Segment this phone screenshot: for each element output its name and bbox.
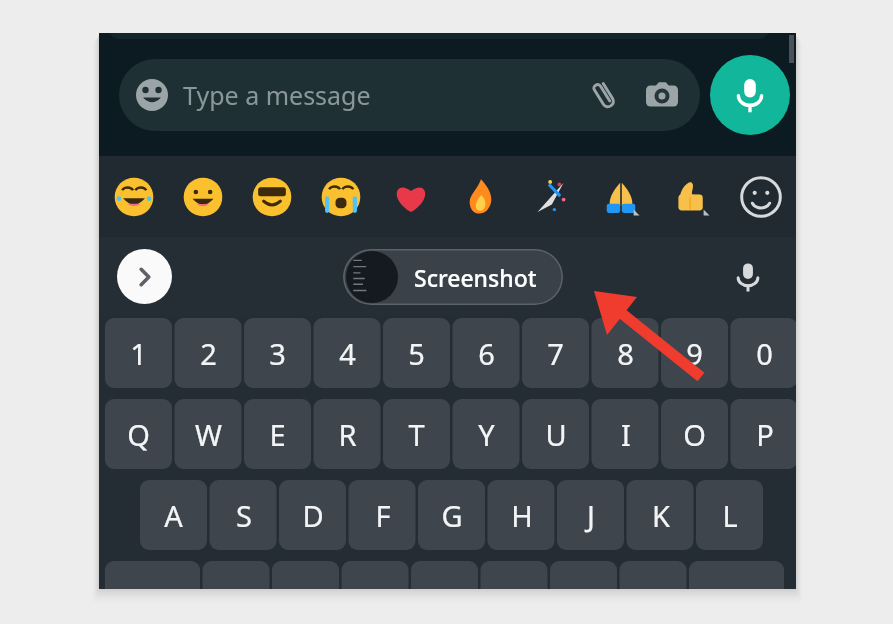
button[interactable]: Expand bbox=[117, 249, 172, 304]
button[interactable]: Camera bbox=[640, 73, 684, 117]
staticText: R bbox=[338, 415, 357, 454]
button[interactable]: 6 bbox=[453, 318, 520, 388]
button[interactable]: O bbox=[661, 399, 728, 469]
staticText: 5 bbox=[408, 334, 425, 373]
button[interactable]: Voice input bbox=[726, 255, 770, 299]
button[interactable]: L bbox=[696, 480, 763, 550]
button[interactable]: Thumbs up emoji bbox=[656, 162, 726, 232]
button[interactable]: G bbox=[418, 480, 485, 550]
staticText: O bbox=[683, 415, 706, 454]
button[interactable]: Party emoji bbox=[516, 162, 586, 232]
button[interactable]: Emoji bbox=[119, 59, 700, 131]
staticText: I bbox=[621, 415, 631, 454]
staticText: 4 bbox=[339, 334, 356, 373]
staticText: 6 bbox=[478, 334, 495, 373]
staticText: G bbox=[441, 496, 463, 535]
button[interactable]: Sunglasses emoji bbox=[237, 162, 306, 232]
button[interactable]: More emoji bbox=[726, 162, 796, 232]
button[interactable]: W bbox=[175, 399, 242, 469]
button[interactable]: Attach bbox=[582, 73, 626, 117]
button[interactable]: Screenshot bbox=[343, 249, 563, 305]
button[interactable]: Y bbox=[453, 399, 520, 469]
staticText: 3 bbox=[269, 334, 286, 373]
staticText: P bbox=[756, 415, 774, 454]
button[interactable]: 0 bbox=[731, 318, 796, 388]
staticText: J bbox=[587, 496, 595, 535]
staticText: F bbox=[375, 496, 391, 535]
button[interactable]: Laughing emoji bbox=[99, 162, 168, 232]
staticText: Screenshot bbox=[414, 262, 537, 293]
staticText: 2 bbox=[200, 334, 217, 373]
button[interactable]: R bbox=[314, 399, 381, 469]
button[interactable]: E bbox=[244, 399, 311, 469]
staticText: 0 bbox=[756, 334, 773, 373]
button[interactable]: Heart emoji bbox=[376, 162, 446, 232]
button[interactable]: 7 bbox=[522, 318, 589, 388]
button[interactable]: D bbox=[279, 480, 346, 550]
button[interactable]: T bbox=[383, 399, 450, 469]
staticText: 1 bbox=[130, 334, 147, 373]
staticText: 8 bbox=[617, 334, 634, 373]
staticText: S bbox=[236, 496, 252, 535]
button[interactable]: P bbox=[731, 399, 796, 469]
staticText: Q bbox=[127, 415, 150, 454]
button[interactable]: F bbox=[349, 480, 416, 550]
button[interactable]: 5 bbox=[383, 318, 450, 388]
staticText: H bbox=[511, 496, 533, 535]
button[interactable]: 1 bbox=[105, 318, 172, 388]
button[interactable]: K bbox=[627, 480, 694, 550]
staticText: Type a message bbox=[183, 78, 371, 112]
staticText: 7 bbox=[547, 334, 564, 373]
button[interactable]: 3 bbox=[244, 318, 311, 388]
button[interactable]: 9 bbox=[661, 318, 728, 388]
button[interactable]: 8 bbox=[592, 318, 659, 388]
staticText: T bbox=[408, 415, 425, 454]
staticText: U bbox=[545, 415, 567, 454]
button[interactable]: H bbox=[488, 480, 555, 550]
other: Emoji bbox=[135, 78, 169, 112]
button[interactable]: Q bbox=[105, 399, 172, 469]
button[interactable]: Praying hands emoji bbox=[586, 162, 656, 232]
staticText: 9 bbox=[686, 334, 703, 373]
button[interactable]: 4 bbox=[314, 318, 381, 388]
button[interactable]: Voice message bbox=[710, 55, 790, 135]
button[interactable]: I bbox=[592, 399, 659, 469]
button[interactable]: A bbox=[140, 480, 207, 550]
staticText: E bbox=[269, 415, 286, 454]
button[interactable]: J bbox=[557, 480, 624, 550]
staticText: A bbox=[164, 496, 183, 535]
staticText: K bbox=[652, 496, 670, 535]
staticText: W bbox=[195, 415, 222, 454]
button[interactable]: Crying emoji bbox=[306, 162, 376, 232]
button[interactable]: U bbox=[522, 399, 589, 469]
button[interactable]: Fire emoji bbox=[446, 162, 516, 232]
button[interactable]: 2 bbox=[175, 318, 242, 388]
staticText: Y bbox=[478, 415, 495, 454]
button[interactable]: Smiling emoji bbox=[168, 162, 237, 232]
staticText: D bbox=[302, 496, 324, 535]
button[interactable]: S bbox=[210, 480, 277, 550]
staticText: L bbox=[722, 496, 738, 535]
